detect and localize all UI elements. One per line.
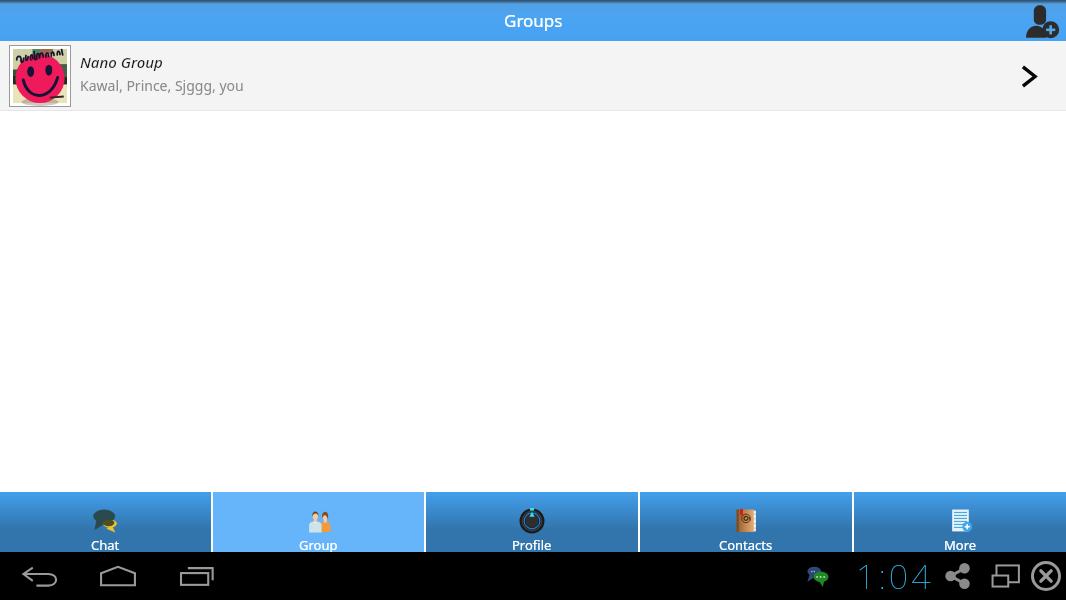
staticText: Groups	[504, 9, 563, 32]
button[interactable]: Open group	[992, 41, 1066, 111]
staticText: Chat	[91, 536, 120, 552]
button[interactable]: Recent apps	[180, 556, 214, 596]
staticText: Contacts	[719, 536, 773, 552]
button[interactable]: Chat	[0, 492, 211, 552]
button[interactable]: Profile	[426, 492, 638, 552]
staticText: Kawal, Prince, Sjggg, you	[80, 76, 244, 95]
staticText: More	[944, 536, 977, 552]
button[interactable]: Multi window	[992, 556, 1020, 596]
button[interactable]: Home	[100, 556, 136, 596]
button[interactable]: Back	[22, 556, 58, 596]
staticText: Group	[299, 536, 338, 552]
staticText: 1:04	[856, 553, 934, 599]
other: New message notification	[806, 564, 830, 588]
staticText: Profile	[512, 536, 552, 552]
button[interactable]: Add member	[1018, 0, 1066, 41]
button[interactable]: More	[854, 492, 1066, 552]
button[interactable]: Group	[213, 492, 424, 552]
button[interactable]: Nano Group	[0, 41, 1066, 111]
button[interactable]: Contacts	[640, 492, 852, 552]
staticText: Nano Group	[80, 52, 163, 72]
button[interactable]: Close	[1031, 556, 1061, 596]
button[interactable]: Share	[946, 556, 970, 596]
